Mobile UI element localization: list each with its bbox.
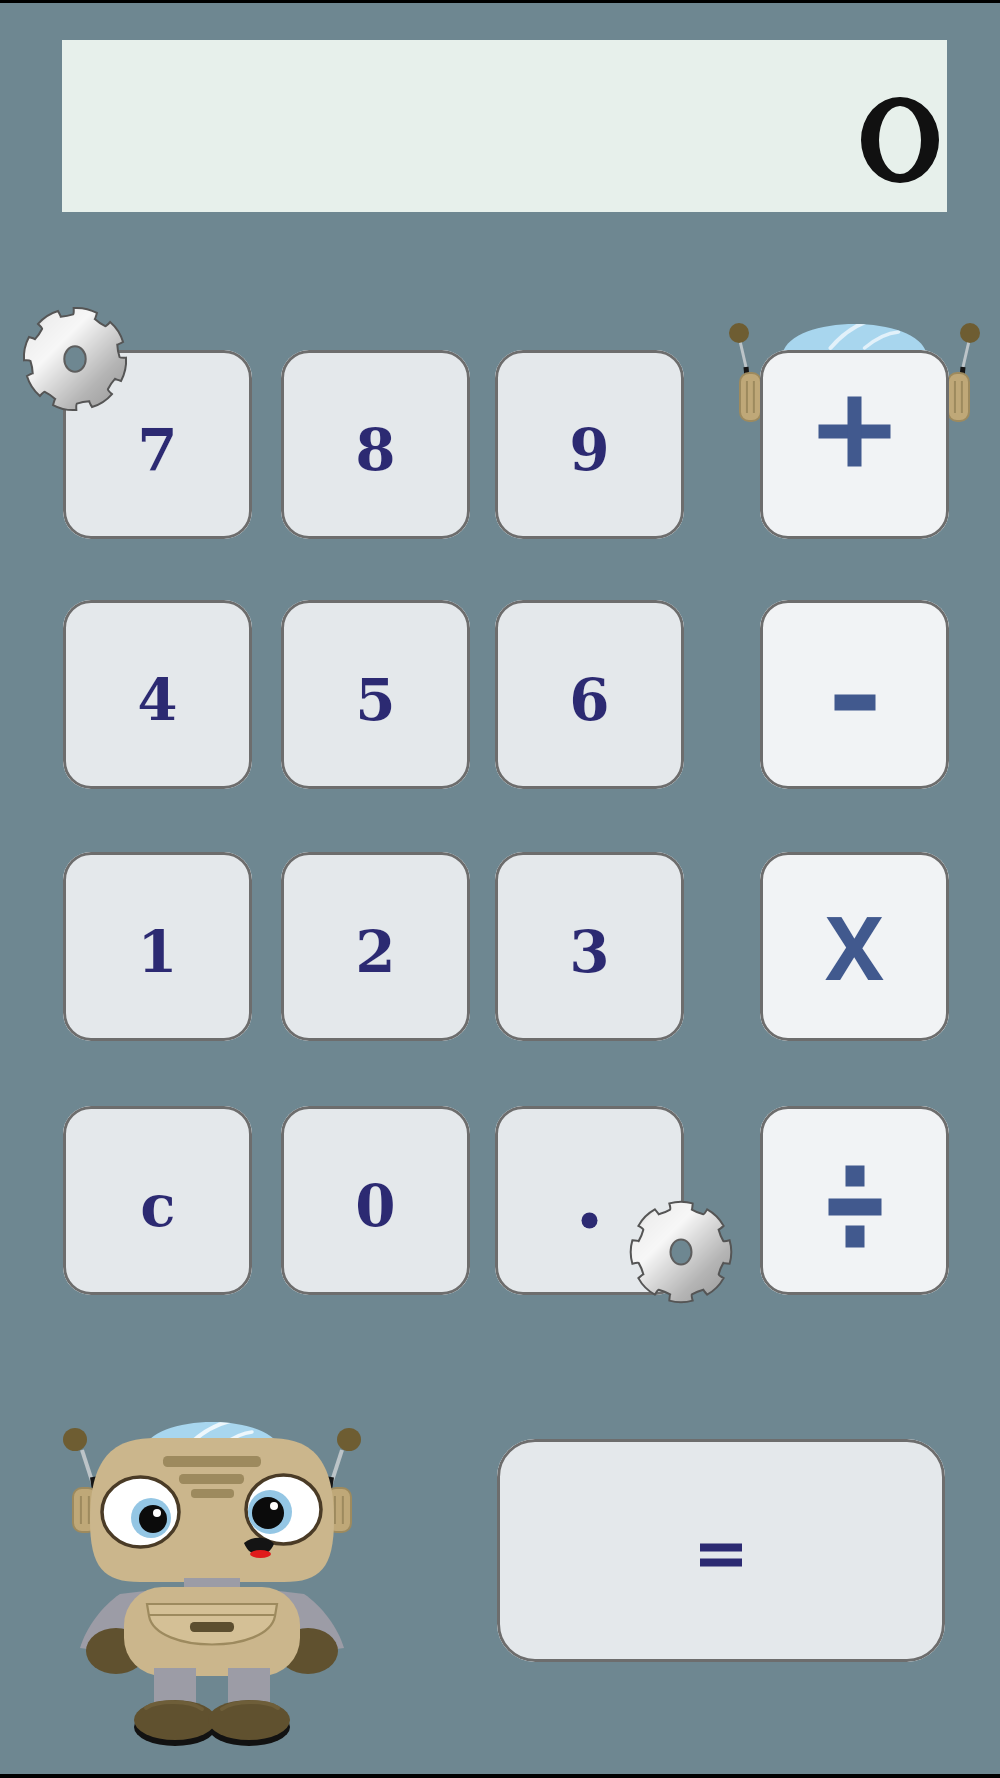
button[interactable]: 5 xyxy=(281,600,470,789)
staticText: 9 xyxy=(569,416,610,484)
button[interactable]: Divide xyxy=(760,1106,949,1295)
button[interactable]: Equals xyxy=(497,1439,945,1662)
button[interactable]: Add xyxy=(760,350,949,539)
button[interactable]: 8 xyxy=(281,350,470,539)
staticText: 7 xyxy=(137,416,178,484)
button[interactable]: 0 xyxy=(281,1106,470,1295)
staticText: 0 xyxy=(355,1172,396,1240)
staticText: 6 xyxy=(569,666,610,734)
button[interactable]: 6 xyxy=(495,600,684,789)
staticText: 5 xyxy=(355,666,396,734)
button[interactable]: 3 xyxy=(495,852,684,1041)
button[interactable]: Decimal point xyxy=(495,1106,684,1295)
button[interactable]: 7 xyxy=(63,350,252,539)
button[interactable]: Subtract xyxy=(760,600,949,789)
staticText: 8 xyxy=(355,416,396,484)
staticText: 4 xyxy=(137,666,178,734)
button[interactable]: Multiply xyxy=(760,852,949,1041)
button[interactable]: 2 xyxy=(281,852,470,1041)
staticText: 2 xyxy=(355,918,396,986)
button[interactable]: 4 xyxy=(63,600,252,789)
staticText: c xyxy=(140,1172,176,1240)
button[interactable]: 1 xyxy=(63,852,252,1041)
staticText: 1 xyxy=(137,918,178,986)
staticText: 3 xyxy=(569,918,610,986)
button[interactable]: c xyxy=(63,1106,252,1295)
button[interactable]: Display xyxy=(62,40,947,212)
button[interactable]: 9 xyxy=(495,350,684,539)
staticText: X xyxy=(825,886,884,1006)
